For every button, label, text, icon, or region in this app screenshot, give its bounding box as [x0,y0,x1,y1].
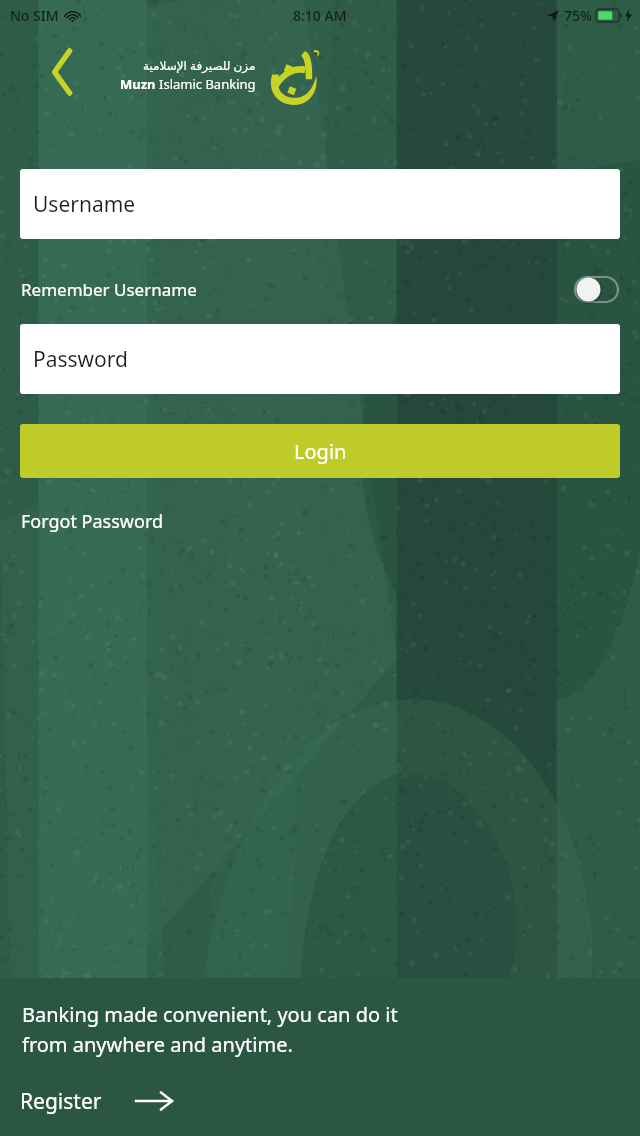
staticText: Remember Username [21,278,197,301]
staticText: No SIM [10,6,59,25]
button[interactable]: Forgot Password [21,504,164,538]
staticText: Login [294,438,347,465]
button[interactable]: Back [24,38,92,106]
button[interactable]: Remember Username [21,266,619,312]
button[interactable]: Register [20,1080,180,1122]
staticText: Muzn [120,75,159,93]
staticText: Register [20,1087,102,1116]
button[interactable]: Remember Username toggle [574,276,619,303]
staticText: Islamic Banking [159,75,256,93]
button[interactable]: Password [20,324,620,394]
staticText: Username [33,190,136,219]
staticText: Password [33,345,128,374]
staticText: 75% [564,6,592,25]
button[interactable]: Login [20,424,620,478]
staticText: 8:10 AM [293,6,347,25]
staticText: مزن للصيرفة الإسلامية [143,57,256,73]
staticText: Banking made convenient, you can do it f… [22,1001,398,1058]
button[interactable]: Username [20,169,620,239]
staticText: Forgot Password [21,509,164,534]
